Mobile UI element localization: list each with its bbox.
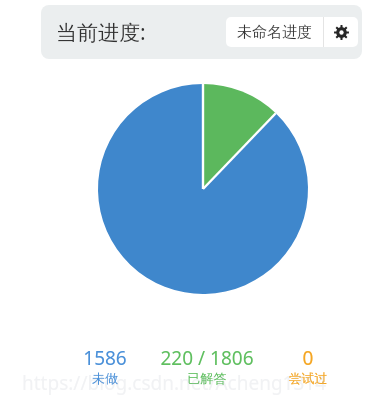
button[interactable]: 0 bbox=[268, 345, 348, 391]
staticText: 1586 bbox=[64, 345, 146, 371]
staticText: 已解答 bbox=[148, 370, 266, 386]
staticText: 当前进度: bbox=[56, 18, 146, 47]
button[interactable]: 未命名进度 bbox=[226, 17, 323, 47]
staticText: 0 bbox=[268, 345, 348, 371]
staticText: 未命名进度 bbox=[237, 23, 312, 42]
button[interactable]: Settings bbox=[324, 17, 358, 47]
button[interactable]: 220 / 1806 bbox=[148, 345, 266, 391]
staticText: 220 / 1806 bbox=[148, 345, 266, 371]
button[interactable]: 1586 bbox=[64, 345, 146, 391]
staticText: 未做 bbox=[64, 370, 146, 386]
staticText: https://blog.csdn.net/Acheng1314 bbox=[22, 370, 327, 396]
staticText: 尝试过 bbox=[268, 370, 348, 386]
